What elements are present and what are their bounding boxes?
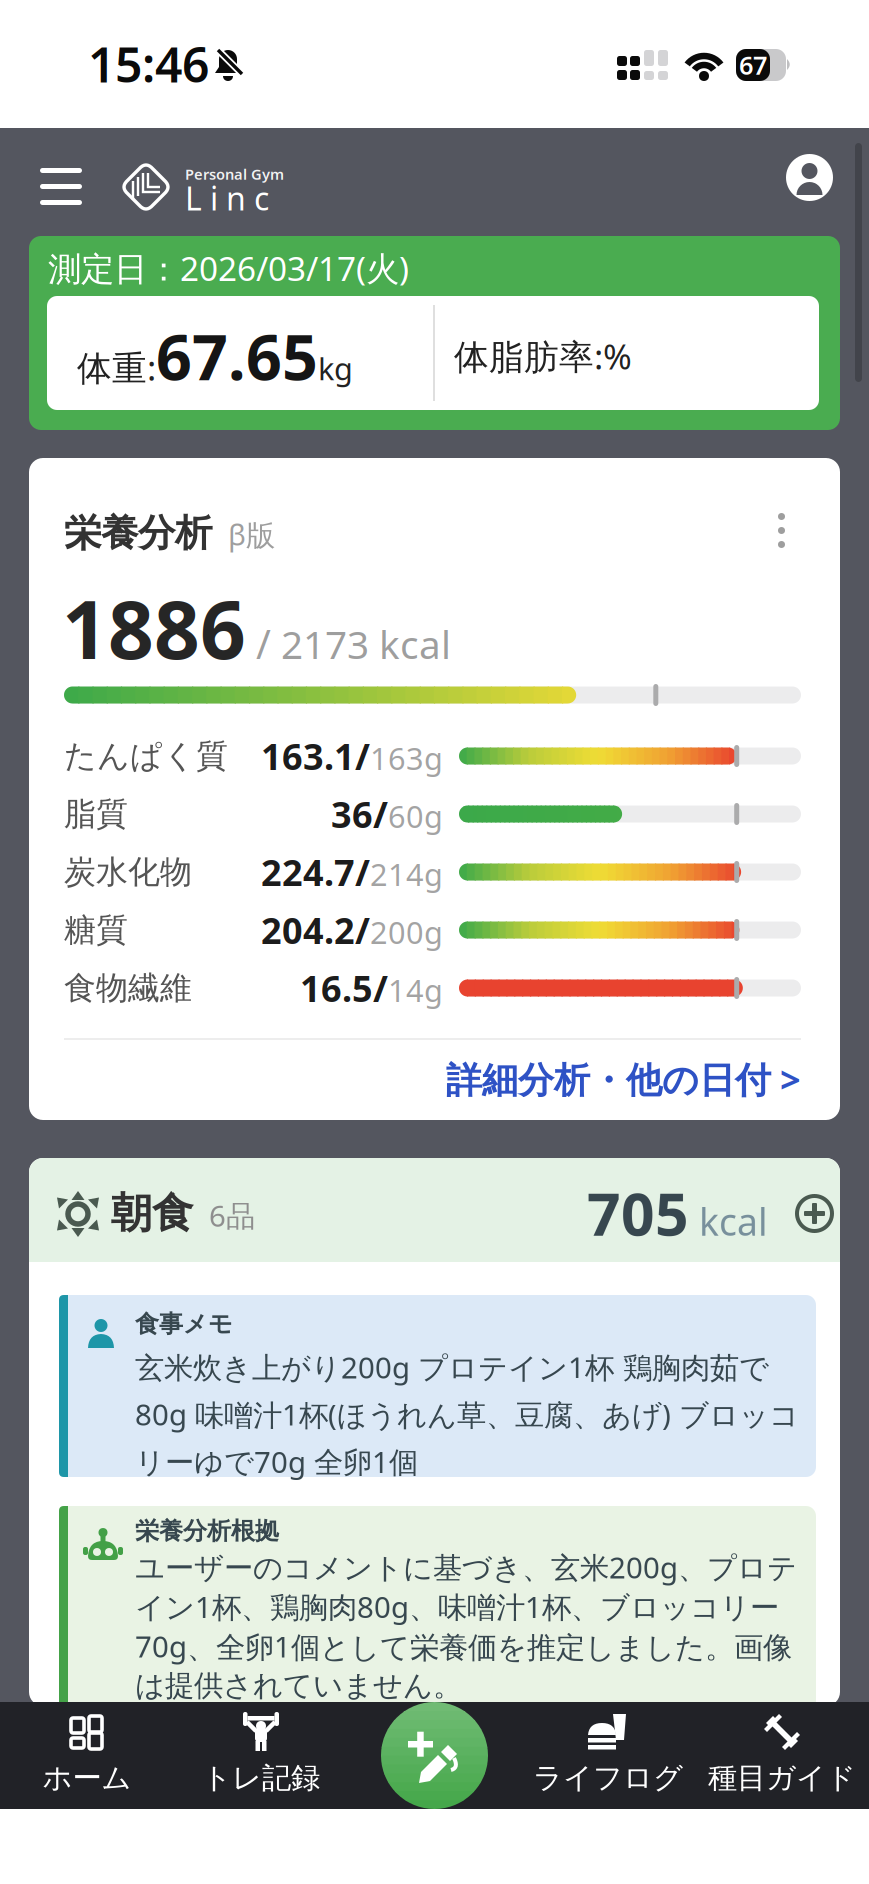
staticText: 224.7/ bbox=[261, 848, 370, 896]
staticText: 糖質 bbox=[64, 910, 128, 950]
staticText: 体脂肪率:% bbox=[454, 333, 632, 379]
staticText: 脂質 bbox=[64, 794, 128, 834]
staticText: 体重: bbox=[77, 344, 156, 390]
staticText: 種目ガイド bbox=[708, 1760, 856, 1796]
button[interactable]: Personal Gym bbox=[119, 128, 409, 218]
staticText: 67 bbox=[739, 48, 767, 82]
staticText: 16.5/ bbox=[300, 964, 388, 1012]
staticText: ホーム bbox=[42, 1760, 131, 1796]
staticText: kcal bbox=[689, 1196, 768, 1246]
staticText: 食事メモ bbox=[135, 1309, 233, 1339]
staticText: 163g bbox=[370, 738, 443, 778]
staticText: / bbox=[246, 617, 281, 670]
staticText: β版 bbox=[212, 515, 275, 554]
staticText: 2173 kcal bbox=[281, 618, 451, 670]
staticText: 163.1/ bbox=[261, 732, 370, 780]
staticText: 栄養分析 bbox=[64, 510, 212, 556]
staticText: リーゆで70g 全卵1個 bbox=[135, 1442, 418, 1481]
staticText: 炭水化物 bbox=[64, 852, 192, 892]
staticText: 栄養分析根拠 bbox=[135, 1516, 279, 1546]
staticText: 食物繊維 bbox=[64, 968, 192, 1008]
staticText: たんぱく質 bbox=[64, 736, 228, 776]
staticText: 36/ bbox=[331, 790, 388, 838]
button[interactable]: ライフログ bbox=[521, 1702, 695, 1809]
staticText: ユーザーのコメントに基づき、玄米200g、プロテ bbox=[135, 1547, 797, 1586]
staticText: ライフログ bbox=[533, 1760, 683, 1796]
button[interactable]: トレ記録 bbox=[174, 1702, 348, 1809]
staticText: イン1杯、鶏胸肉80g、味噌汁1杯、ブロッコリー bbox=[135, 1587, 779, 1626]
staticText: kg bbox=[318, 348, 353, 389]
staticText: 60g bbox=[388, 796, 443, 836]
staticText: は提供されていません。 bbox=[135, 1668, 462, 1704]
staticText: 6品 bbox=[193, 1196, 255, 1235]
button[interactable] bbox=[762, 505, 802, 561]
staticText: トレ記録 bbox=[202, 1760, 320, 1796]
staticText: 200g bbox=[370, 912, 443, 952]
staticText: 70g、全卵1個として栄養価を推定しました。画像 bbox=[135, 1627, 792, 1666]
staticText: 214g bbox=[370, 854, 443, 894]
staticText: 80g 味噌汁1杯(ほうれん草、豆腐、あげ) ブロッコ bbox=[135, 1395, 799, 1434]
staticText: 朝食 bbox=[111, 1188, 193, 1238]
button[interactable]: ホーム bbox=[0, 1702, 174, 1809]
staticText: 15:46 bbox=[88, 32, 209, 96]
staticText: 705 bbox=[587, 1174, 689, 1252]
staticText: 67.65 bbox=[156, 314, 318, 398]
staticText: 204.2/ bbox=[261, 906, 370, 954]
staticText: 玄米炊き上がり200g プロテイン1杯 鶏胸肉茹で bbox=[135, 1347, 769, 1386]
button[interactable] bbox=[795, 1194, 834, 1233]
staticText: L i n c bbox=[185, 177, 269, 219]
button[interactable] bbox=[786, 154, 833, 201]
staticText: 1886 bbox=[62, 575, 246, 681]
button[interactable]: 詳細分析・他の日付 > bbox=[29, 1074, 801, 1084]
staticText: 14g bbox=[388, 970, 443, 1010]
staticText: 詳細分析・他の日付 > bbox=[446, 1055, 801, 1103]
staticText: 測定日：2026/03/17(火) bbox=[48, 246, 409, 290]
button[interactable] bbox=[381, 1702, 488, 1809]
button[interactable]: 種目ガイド bbox=[695, 1702, 869, 1809]
button[interactable] bbox=[33, 155, 95, 215]
staticText: Personal Gym bbox=[185, 164, 284, 184]
